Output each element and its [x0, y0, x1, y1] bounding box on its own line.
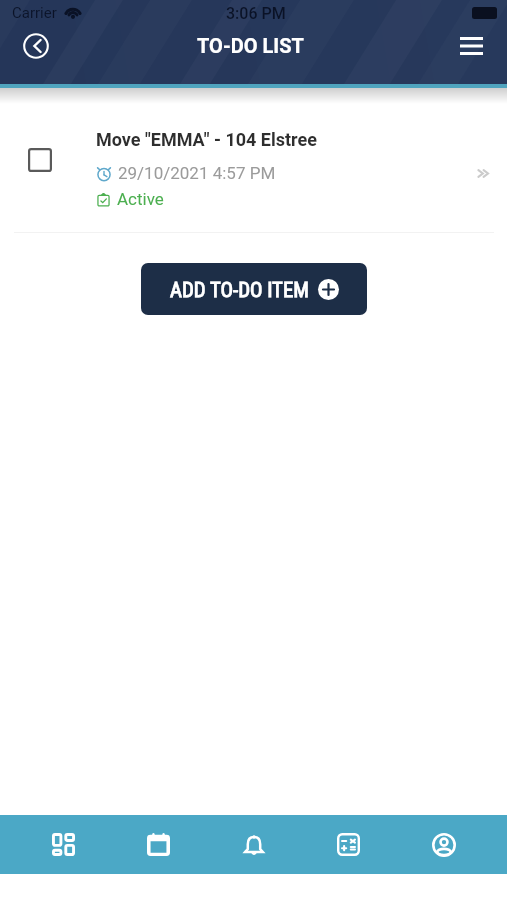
button[interactable]: ADD TO-DO ITEM: [141, 263, 367, 315]
button[interactable]: Calculator: [301, 815, 396, 874]
button[interactable]: Notifications: [206, 815, 301, 874]
staticText: 3:06 PM: [226, 4, 286, 23]
button[interactable]: Back: [16, 26, 56, 66]
staticText: Active: [117, 189, 164, 209]
button[interactable]: Calendar: [111, 815, 206, 874]
button[interactable]: Menu: [451, 26, 491, 66]
staticText: Move "EMMA" - 104 Elstree: [96, 129, 317, 150]
staticText: Carrier: [12, 4, 57, 22]
staticText: TO-DO LIST: [197, 34, 304, 57]
button[interactable]: Open item: [467, 158, 497, 188]
staticText: ADD TO-DO ITEM: [170, 278, 309, 302]
staticText: 29/10/2021 4:57 PM: [118, 163, 276, 183]
button[interactable]: Account: [396, 815, 491, 874]
button[interactable]: Dashboard: [16, 815, 111, 874]
button[interactable]: Toggle complete: [0, 129, 507, 233]
button[interactable]: Toggle complete: [23, 143, 57, 177]
